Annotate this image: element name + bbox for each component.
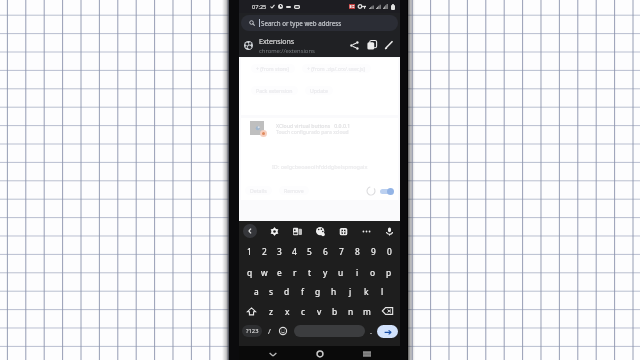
staticText: Details xyxy=(250,187,267,194)
staticText: ID: oelgcbeoaeoihfdddgbelspmogaix xyxy=(272,163,368,170)
button[interactable]: m xyxy=(359,301,375,321)
staticText: o xyxy=(370,267,376,278)
staticText: c xyxy=(301,306,306,317)
button[interactable]: 1 xyxy=(242,241,257,261)
button[interactable]: Settings xyxy=(267,224,281,238)
button[interactable]: Share xyxy=(346,34,363,56)
button[interactable]: Hide keyboard xyxy=(266,347,280,360)
staticText: k xyxy=(364,286,369,297)
button[interactable]: d xyxy=(279,281,294,301)
button[interactable]: Details xyxy=(245,186,272,195)
staticText: + (from store) xyxy=(256,65,290,72)
staticText: XCloud virtual buttons 0.0.0.1 xyxy=(276,122,351,129)
button[interactable]: Backspace xyxy=(375,301,400,321)
button[interactable]: r xyxy=(287,262,302,282)
button[interactable]: Themes xyxy=(313,224,327,238)
button[interactable]: t xyxy=(302,262,317,282)
button[interactable]: y xyxy=(317,262,333,282)
button[interactable]: z xyxy=(263,301,279,321)
button[interactable]: Edit xyxy=(380,34,397,56)
button[interactable]: Emoji xyxy=(276,321,290,341)
button[interactable]: Stickers xyxy=(290,224,304,238)
staticText: Update xyxy=(310,87,328,94)
button[interactable]: Pack extension xyxy=(251,86,298,95)
button[interactable]: h xyxy=(326,281,342,301)
button[interactable]: Update xyxy=(305,86,333,95)
button[interactable]: b xyxy=(327,301,343,321)
button[interactable]: u xyxy=(333,262,349,282)
staticText: q xyxy=(247,267,253,278)
staticText: 7 xyxy=(339,246,344,257)
button[interactable]: g xyxy=(310,281,326,301)
button[interactable]: c xyxy=(295,301,311,321)
button[interactable]: q xyxy=(242,262,257,282)
button[interactable]: 8 xyxy=(349,241,365,261)
button[interactable]: Home xyxy=(313,347,327,360)
button[interactable]: l xyxy=(374,281,390,301)
staticText: a xyxy=(254,286,259,297)
button[interactable]: k xyxy=(358,281,374,301)
staticText: Pack extension xyxy=(256,87,293,94)
staticText: 5 xyxy=(307,246,312,257)
button[interactable]: Shift xyxy=(239,301,263,321)
staticText: 1 xyxy=(247,246,252,257)
staticText: + (from .zip/.crx/.user.js) xyxy=(307,65,366,72)
staticText: x xyxy=(285,306,290,317)
staticText: 4 xyxy=(292,246,297,257)
button[interactable]: 0 xyxy=(381,241,397,261)
button[interactable]: More xyxy=(359,224,373,238)
button[interactable]: . xyxy=(365,321,377,341)
staticText: ?123 xyxy=(246,327,259,335)
button[interactable]: Enable extension xyxy=(380,187,393,195)
button[interactable]: Voice input xyxy=(382,224,396,238)
button[interactable]: Remove xyxy=(279,186,309,195)
staticText: 2 xyxy=(262,246,267,257)
staticText: j xyxy=(349,286,352,297)
staticText: 9 xyxy=(371,246,376,257)
button[interactable]: Search or type web address xyxy=(241,15,398,31)
staticText: Search or type web address xyxy=(261,19,342,27)
button[interactable]: w xyxy=(257,262,272,282)
button[interactable]: ?123 xyxy=(242,325,262,337)
button[interactable]: p xyxy=(381,262,397,282)
button[interactable]: e xyxy=(272,262,287,282)
staticText: Extensions xyxy=(259,36,295,46)
button[interactable]: 3 xyxy=(272,241,287,261)
button[interactable]: Reload xyxy=(365,185,376,196)
button[interactable]: 5 xyxy=(302,241,317,261)
staticText: Touch configurado para xcloud xyxy=(276,129,349,136)
staticText: 6 xyxy=(323,246,328,257)
button[interactable]: + (from store) xyxy=(251,64,295,73)
button[interactable]: s xyxy=(264,281,279,301)
button[interactable]: a xyxy=(249,281,264,301)
button[interactable]: + (from .zip/.crx/.user.js) xyxy=(302,64,371,73)
staticText: / xyxy=(268,326,271,336)
button[interactable]: x xyxy=(279,301,295,321)
button[interactable]: o xyxy=(365,262,381,282)
button[interactable]: v xyxy=(311,301,327,321)
staticText: . xyxy=(370,326,373,336)
staticText: l xyxy=(381,286,384,297)
staticText: s xyxy=(269,286,274,297)
button[interactable]: / xyxy=(262,321,276,341)
button[interactable]: 2 xyxy=(257,241,272,261)
button[interactable]: 4 xyxy=(287,241,302,261)
button[interactable]: 9 xyxy=(365,241,381,261)
button[interactable]: Back xyxy=(243,224,257,238)
button[interactable]: Space xyxy=(294,325,365,337)
button[interactable]: Tabs xyxy=(363,34,380,56)
button[interactable]: 7 xyxy=(333,241,349,261)
button[interactable]: Clipboard xyxy=(336,224,350,238)
button[interactable]: Recents xyxy=(360,347,374,360)
button[interactable]: f xyxy=(294,281,310,301)
button[interactable]: 6 xyxy=(317,241,333,261)
button[interactable]: j xyxy=(342,281,358,301)
staticText: u xyxy=(338,267,344,278)
button[interactable]: Enter xyxy=(377,325,398,338)
staticText: e xyxy=(277,267,282,278)
staticText: 3 xyxy=(277,246,282,257)
button[interactable]: i xyxy=(349,262,365,282)
button[interactable]: n xyxy=(343,301,359,321)
staticText: h xyxy=(331,286,337,297)
staticText: f xyxy=(301,286,304,297)
